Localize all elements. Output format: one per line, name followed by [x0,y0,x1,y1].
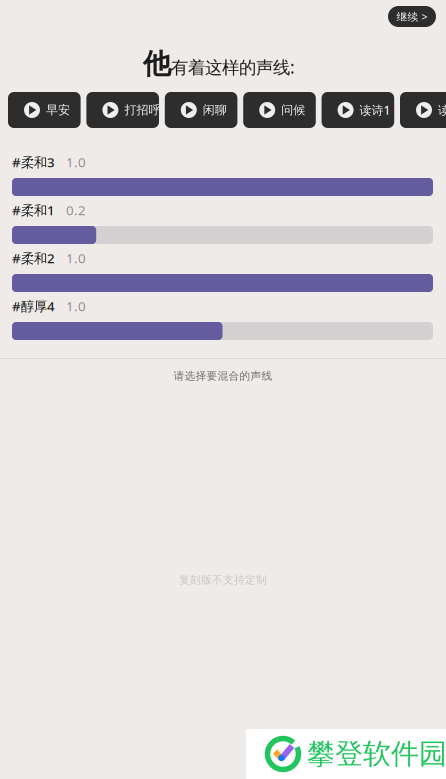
staticText: #柔和3 [12,153,55,171]
staticText: 继续 > [396,9,427,24]
staticText: #醇厚4 [12,297,55,315]
staticText: 打招呼 [124,103,160,117]
button[interactable]: 闲聊 [165,92,237,128]
staticText: 闲聊 [203,103,227,117]
button[interactable]: 问候 [243,92,316,128]
staticText: 1.0 [66,297,86,315]
staticText: 0.2 [66,201,86,219]
staticText: 1.0 [66,249,86,267]
button[interactable]: 读诗2 [400,92,446,128]
staticText: #柔和1 [12,201,55,219]
staticText: 问候 [281,103,305,117]
staticText: 他 [143,47,171,81]
staticText: 读诗2 [438,102,446,118]
button[interactable]: 打招呼 [86,92,159,128]
staticText: 读诗1 [360,102,391,118]
button[interactable]: 继续 > [388,6,436,27]
staticText: 1.0 [66,153,86,171]
staticText: 早安 [46,103,70,117]
staticText: 请选择要混合的声线 [173,369,272,382]
staticText: 复刻版不支持定制 [179,573,267,586]
staticText: #柔和2 [12,249,55,267]
staticText: 有着这样的声线: [171,55,295,78]
button[interactable]: 早安 [8,92,81,128]
button[interactable]: 读诗1 [322,92,394,128]
staticText: 攀登软件园 [307,737,446,771]
